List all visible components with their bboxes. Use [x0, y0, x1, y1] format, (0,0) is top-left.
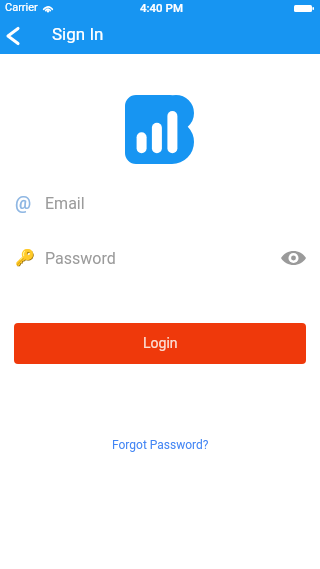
button[interactable]: Password: [0, 244, 320, 272]
button[interactable]: Login: [14, 323, 306, 364]
button[interactable]: Show password: [279, 245, 307, 271]
staticText: Forgot Password?: [112, 438, 209, 452]
staticText: @: [15, 192, 32, 213]
button[interactable]: Forgot Password?: [104, 434, 217, 456]
staticText: Login: [143, 335, 178, 351]
staticText: Carrier: [5, 1, 38, 14]
staticText: Email: [45, 194, 85, 213]
button[interactable]: Email: [0, 189, 320, 217]
staticText: 4:40 PM: [140, 1, 183, 14]
button[interactable]: Back: [0, 21, 26, 51]
staticText: 🔑: [15, 248, 35, 267]
staticText: Sign In: [52, 24, 104, 44]
staticText: Password: [45, 249, 116, 268]
